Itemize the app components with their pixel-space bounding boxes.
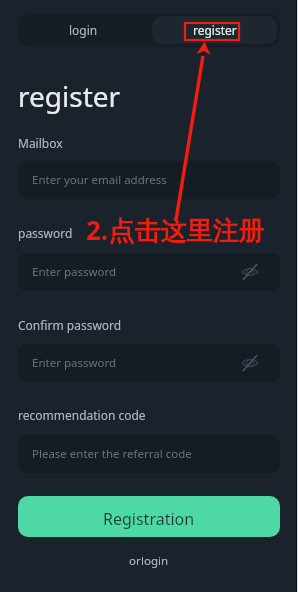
staticText: Enter your email address (32, 172, 167, 188)
staticText: 2.点击这里注册 (86, 212, 265, 248)
staticText: Please enter the referral code (32, 446, 192, 462)
button[interactable]: or (129, 553, 169, 569)
staticText: login (69, 22, 98, 38)
staticText: Registration (103, 508, 195, 530)
button[interactable]: Registration (18, 496, 280, 537)
staticText: recommendation code (18, 407, 146, 423)
staticText: register (193, 22, 237, 38)
staticText: login (141, 553, 169, 569)
button[interactable]: Enter password (18, 344, 280, 382)
button[interactable]: Show password (238, 351, 262, 375)
staticText: Enter password (32, 264, 117, 280)
staticText: Mailbox (18, 135, 63, 151)
button[interactable]: Please enter the referral code (18, 435, 280, 473)
button[interactable]: Show password (238, 260, 262, 284)
button[interactable]: Enter your email address (18, 161, 280, 199)
staticText: register (18, 77, 121, 115)
staticText: Enter password (32, 355, 117, 371)
button[interactable]: Enter password (18, 253, 280, 291)
staticText: Confirm password (18, 317, 122, 333)
button[interactable]: login (18, 13, 149, 47)
button[interactable]: register (152, 16, 277, 44)
staticText: or (129, 553, 141, 569)
staticText: password (18, 225, 73, 241)
